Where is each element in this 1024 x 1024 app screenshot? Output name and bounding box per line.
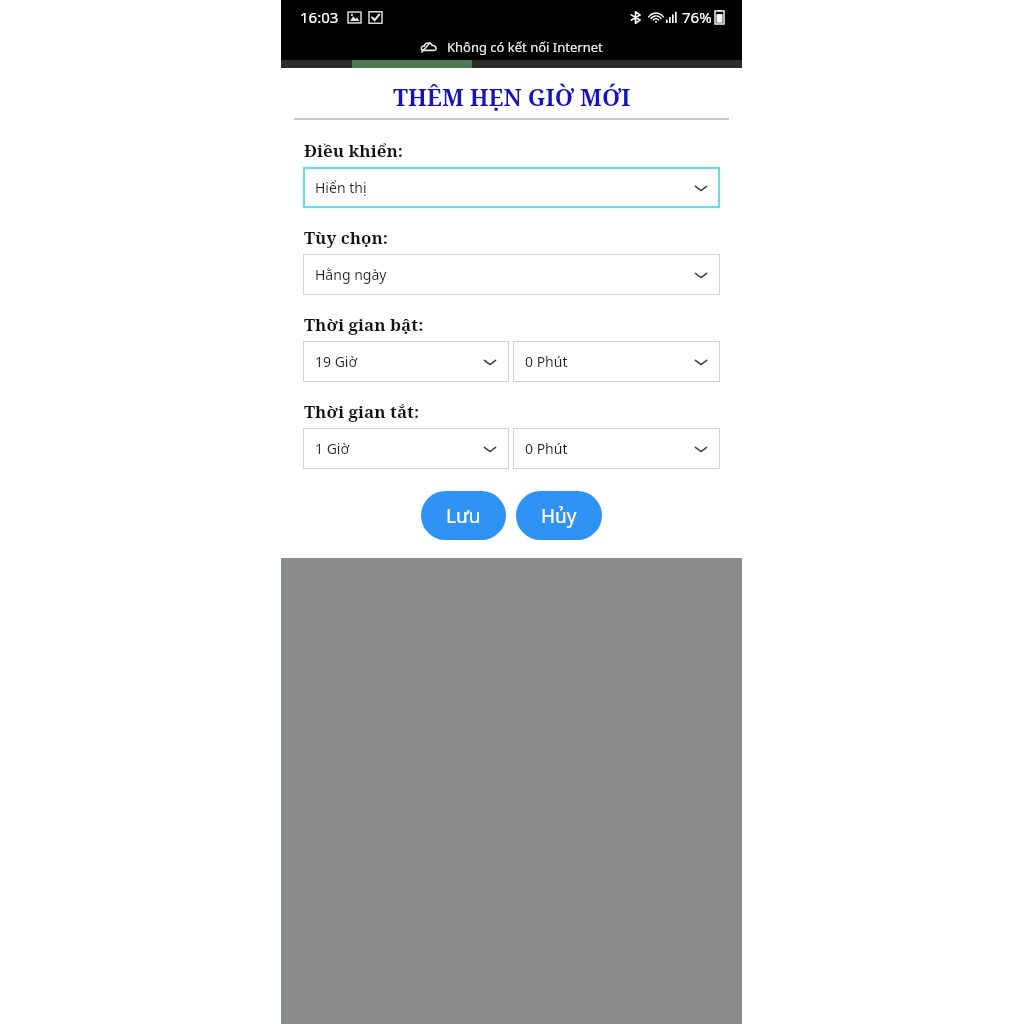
button[interactable]: 0 Phút xyxy=(513,428,720,469)
staticText: Hiển thị xyxy=(315,178,367,197)
button[interactable]: Hiển thị xyxy=(303,167,720,208)
staticText: Tùy chọn: xyxy=(304,226,388,249)
staticText: Thời gian tắt: xyxy=(304,400,420,423)
staticText: Hằng ngày xyxy=(315,265,387,284)
button[interactable]: Hằng ngày xyxy=(303,254,720,295)
staticText: 19 Giờ xyxy=(315,352,358,371)
staticText: Thời gian bật: xyxy=(304,313,424,336)
button[interactable]: 1 Giờ xyxy=(303,428,509,469)
button[interactable]: 19 Giờ xyxy=(303,341,509,382)
staticText: 76% xyxy=(682,7,712,27)
staticText: 16:03 xyxy=(300,7,339,27)
button[interactable]: Hủy xyxy=(516,491,602,540)
staticText: Hủy xyxy=(541,503,577,529)
staticText: 0 Phút xyxy=(525,439,568,458)
staticText: Điều khiển: xyxy=(304,139,403,162)
staticText: Không có kết nối Internet xyxy=(447,38,603,56)
staticText: 0 Phút xyxy=(525,352,568,371)
button[interactable]: 0 Phút xyxy=(513,341,720,382)
staticText: Lưu xyxy=(446,503,481,529)
staticText: 1 Giờ xyxy=(315,439,350,458)
button[interactable]: Lưu xyxy=(421,491,506,540)
staticText: THÊM HẸN GIỜ MỚI xyxy=(393,81,631,112)
